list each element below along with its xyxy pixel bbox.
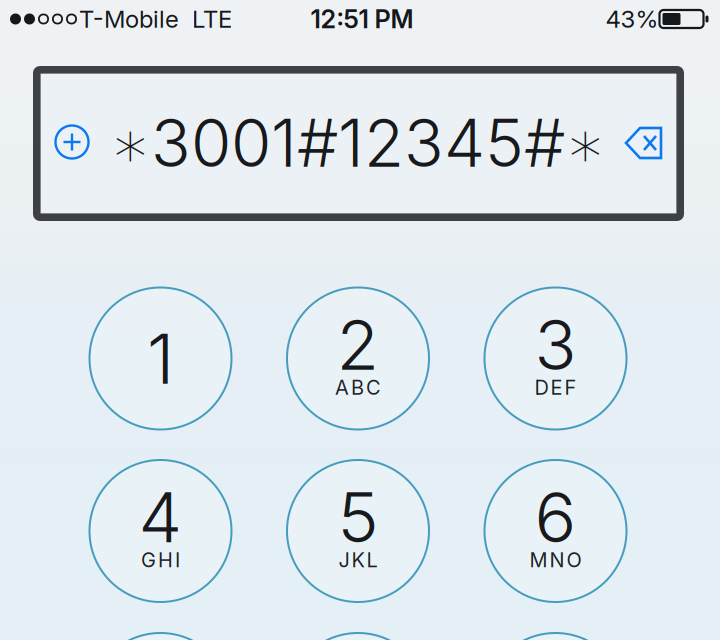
- button[interactable]: 1: [89, 287, 231, 429]
- button[interactable]: 7: [89, 633, 231, 640]
- button[interactable]: 6: [484, 460, 626, 602]
- button[interactable]: 3: [484, 287, 626, 429]
- staticText: 43%: [605, 4, 658, 33]
- button[interactable]: Delete: [623, 123, 667, 163]
- staticText: ∗3001#12345#∗: [110, 103, 606, 182]
- staticText: 5: [337, 475, 378, 559]
- staticText: G H I: [141, 548, 180, 572]
- staticText: 2: [336, 303, 379, 386]
- button[interactable]: 5: [287, 460, 429, 602]
- staticText: 4: [138, 475, 182, 559]
- button[interactable]: 9: [484, 633, 626, 640]
- staticText: 6: [534, 475, 576, 559]
- staticText: LTE: [192, 4, 232, 33]
- button[interactable]: 8: [287, 633, 429, 640]
- staticText: 12:51 PM: [310, 4, 413, 34]
- button[interactable]: Add number: [50, 120, 94, 164]
- button[interactable]: 4: [89, 460, 231, 602]
- staticText: J K L: [338, 548, 377, 572]
- staticText: A B C: [335, 375, 381, 400]
- button[interactable]: 2: [287, 287, 429, 429]
- staticText: D E F: [534, 375, 576, 400]
- staticText: M N O: [529, 548, 581, 572]
- staticText: 1: [147, 317, 174, 400]
- staticText: 3: [534, 303, 576, 386]
- staticText: T-Mobile: [79, 4, 179, 33]
